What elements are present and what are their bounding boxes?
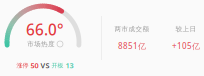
button[interactable]: 涨停 50 VS 开板 13 <box>0 60 90 71</box>
staticText: 开板 <box>51 62 63 69</box>
staticText: +105亿 <box>172 41 200 51</box>
button[interactable]: 较上日 +105亿 <box>160 25 204 55</box>
staticText: 66.0° <box>26 19 64 40</box>
staticText: 50 <box>30 61 38 70</box>
staticText: 8851亿 <box>118 41 146 51</box>
button[interactable]: 市场热度 66.0 <box>0 23 90 50</box>
staticText: 13 <box>65 61 73 70</box>
staticText: 较上日 <box>175 25 196 33</box>
button[interactable]: 两市成交额 8851亿 <box>106 25 158 55</box>
staticText: 两市成交额 <box>114 25 149 33</box>
staticText: VS <box>40 61 49 70</box>
staticText: 涨停 <box>16 62 28 69</box>
staticText: 市场热度 <box>27 40 55 48</box>
